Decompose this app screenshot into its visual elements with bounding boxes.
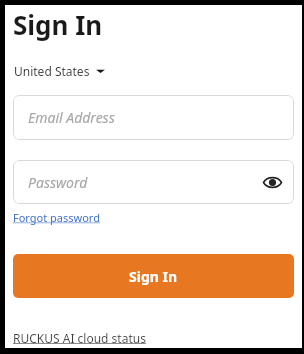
button[interactable]: Forgot password [13,210,100,225]
button[interactable]: United States [13,61,106,81]
staticText: Email Address [28,108,115,127]
staticText: Sign In [129,267,178,286]
staticText: Forgot password [13,210,100,225]
button[interactable]: Show password [258,168,286,196]
button[interactable]: Password [13,160,294,204]
button[interactable]: Sign In [13,254,294,298]
staticText: Password [28,173,88,192]
staticText: United States [14,63,90,79]
button[interactable]: Email Address [13,95,294,140]
button[interactable]: RUCKUS AI cloud status [13,330,146,346]
staticText: RUCKUS AI cloud status [13,330,146,346]
staticText: Sign In [13,7,103,42]
